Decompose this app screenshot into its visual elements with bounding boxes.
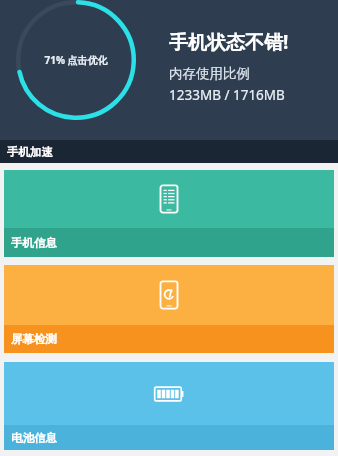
button[interactable]: 屏幕检测 <box>4 265 334 353</box>
staticText: 电池信息 <box>11 431 57 445</box>
staticText: 手机状态不错! <box>169 29 289 55</box>
staticText: 71% 点击优化 <box>44 53 108 67</box>
staticText: 屏幕检测 <box>11 332 57 346</box>
staticText: 内存使用比例 <box>169 65 250 82</box>
button[interactable]: 手机加速 <box>0 140 338 163</box>
button[interactable]: 电池信息 <box>4 362 334 450</box>
staticText: 手机信息 <box>11 236 57 250</box>
button[interactable]: 点击优化 <box>14 0 138 122</box>
button[interactable]: 手机信息 <box>4 170 334 257</box>
staticText: 1233MB / 1716MB <box>169 86 285 104</box>
staticText: 手机加速 <box>7 145 53 159</box>
